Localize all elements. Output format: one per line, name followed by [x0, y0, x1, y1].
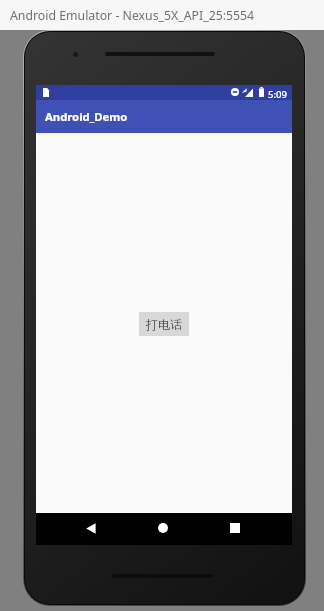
staticText: Android_Demo — [45, 109, 128, 124]
staticText: 5:09 — [268, 88, 288, 101]
button[interactable]: Back — [75, 513, 107, 545]
staticText: Android Emulator - Nexus_5X_API_25:5554 — [10, 7, 255, 24]
staticText: 打电话 — [146, 317, 182, 332]
button[interactable]: 打电话 — [139, 312, 189, 336]
button[interactable]: Home — [147, 513, 179, 545]
button[interactable]: Android_Demo — [36, 100, 292, 133]
button[interactable]: Recent apps — [219, 513, 251, 545]
